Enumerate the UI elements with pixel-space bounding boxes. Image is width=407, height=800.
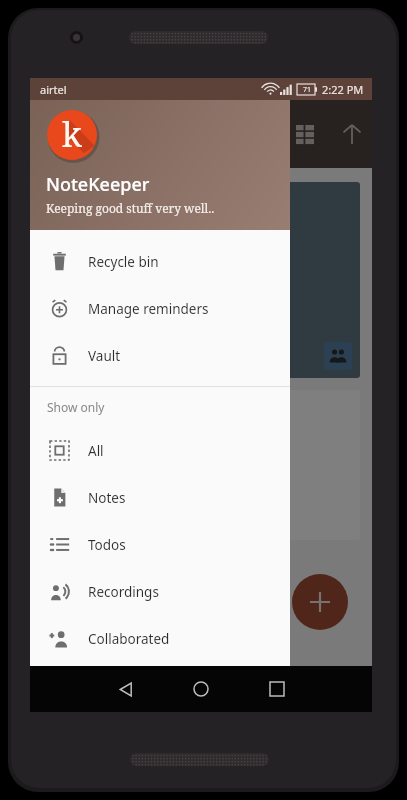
button[interactable]: Recycle bin: [30, 238, 290, 285]
button[interactable]: k: [30, 100, 290, 230]
button[interactable]: Add note: [292, 574, 348, 630]
button[interactable]: Scroll to top: [335, 117, 369, 151]
button[interactable]: Notes: [30, 474, 290, 521]
button[interactable]: Vault: [30, 332, 290, 379]
button[interactable]: Back: [106, 670, 144, 708]
staticText: Show only: [47, 399, 105, 415]
button[interactable]: All: [30, 427, 290, 474]
button[interactable]: Fri, 20 Oct 21:49 PM: [44, 182, 360, 378]
staticText: All: [88, 442, 104, 460]
button[interactable]: Recent apps: [258, 670, 296, 708]
staticText: Some notes: [58, 213, 136, 232]
staticText: Fri, 20 Oct 21:49 PM: [58, 192, 162, 207]
staticText: Recycle bin: [88, 253, 159, 271]
staticText: Recordings: [88, 583, 159, 601]
staticText: k: [62, 111, 82, 157]
staticText: Vault: [88, 347, 121, 365]
button[interactable]: Collaborated: [30, 615, 290, 662]
staticText: 71: [303, 85, 312, 95]
staticText: 2:22 PM: [322, 82, 364, 97]
staticText: Todos: [88, 536, 126, 554]
staticText: Notes: [88, 489, 126, 507]
staticText: Keeping good stuff very well..: [46, 200, 215, 216]
button[interactable]: Recordings: [30, 568, 290, 615]
button[interactable]: Manage reminders: [30, 285, 290, 332]
staticText: this one is DONE: [58, 288, 177, 308]
staticText: Collaborated: [88, 630, 170, 648]
staticText: my todos: [58, 258, 124, 278]
staticText: Manage reminders: [88, 300, 209, 318]
button[interactable]: Home: [182, 670, 220, 708]
button[interactable]: Grid view: [288, 117, 322, 151]
staticText: NoteKeeper: [46, 172, 150, 197]
staticText: airtel: [40, 82, 67, 97]
button[interactable]: Todos: [30, 521, 290, 568]
